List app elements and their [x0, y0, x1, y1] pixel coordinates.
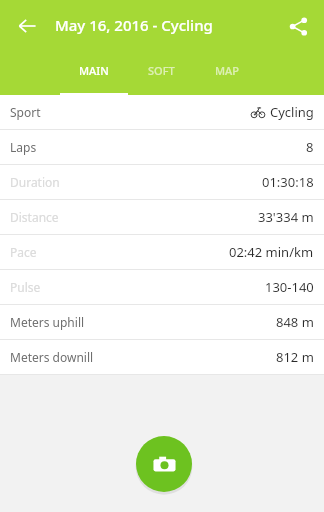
button[interactable]: Sport: [0, 95, 324, 129]
staticText: Sport: [10, 104, 41, 120]
button[interactable]: Meters downill: [0, 340, 324, 374]
staticText: 02:42 min/km: [229, 243, 314, 261]
staticText: 130-140: [265, 278, 314, 296]
button[interactable]: Share: [278, 6, 318, 46]
button[interactable]: Duration: [0, 165, 324, 199]
button[interactable]: Take photo: [136, 436, 192, 492]
staticText: Laps: [10, 139, 37, 155]
button[interactable]: Back: [7, 6, 47, 46]
staticText: 33'334 m: [258, 208, 314, 226]
staticText: 01:30:18: [262, 173, 314, 191]
staticText: MAP: [215, 63, 240, 78]
staticText: Duration: [10, 174, 60, 190]
staticText: MAIN: [79, 63, 109, 78]
button[interactable]: MAP: [194, 52, 260, 95]
button[interactable]: Pace: [0, 235, 324, 269]
staticText: SOFT: [148, 63, 175, 78]
button[interactable]: MAIN: [60, 52, 128, 95]
staticText: Meters downill: [10, 349, 94, 365]
staticText: Distance: [10, 209, 59, 225]
button[interactable]: SOFT: [128, 52, 194, 95]
staticText: Pace: [10, 244, 37, 260]
button[interactable]: Distance: [0, 200, 324, 234]
button[interactable]: Pulse: [0, 270, 324, 304]
staticText: May 16, 2016 - Cycling: [55, 15, 213, 35]
staticText: Meters uphill: [10, 314, 85, 330]
button[interactable]: Meters uphill: [0, 305, 324, 339]
staticText: Pulse: [10, 279, 41, 295]
staticText: 8: [306, 138, 314, 156]
staticText: Cycling: [270, 103, 314, 121]
button[interactable]: Laps: [0, 130, 324, 164]
staticText: 848 m: [276, 313, 314, 331]
staticText: 812 m: [276, 348, 314, 366]
